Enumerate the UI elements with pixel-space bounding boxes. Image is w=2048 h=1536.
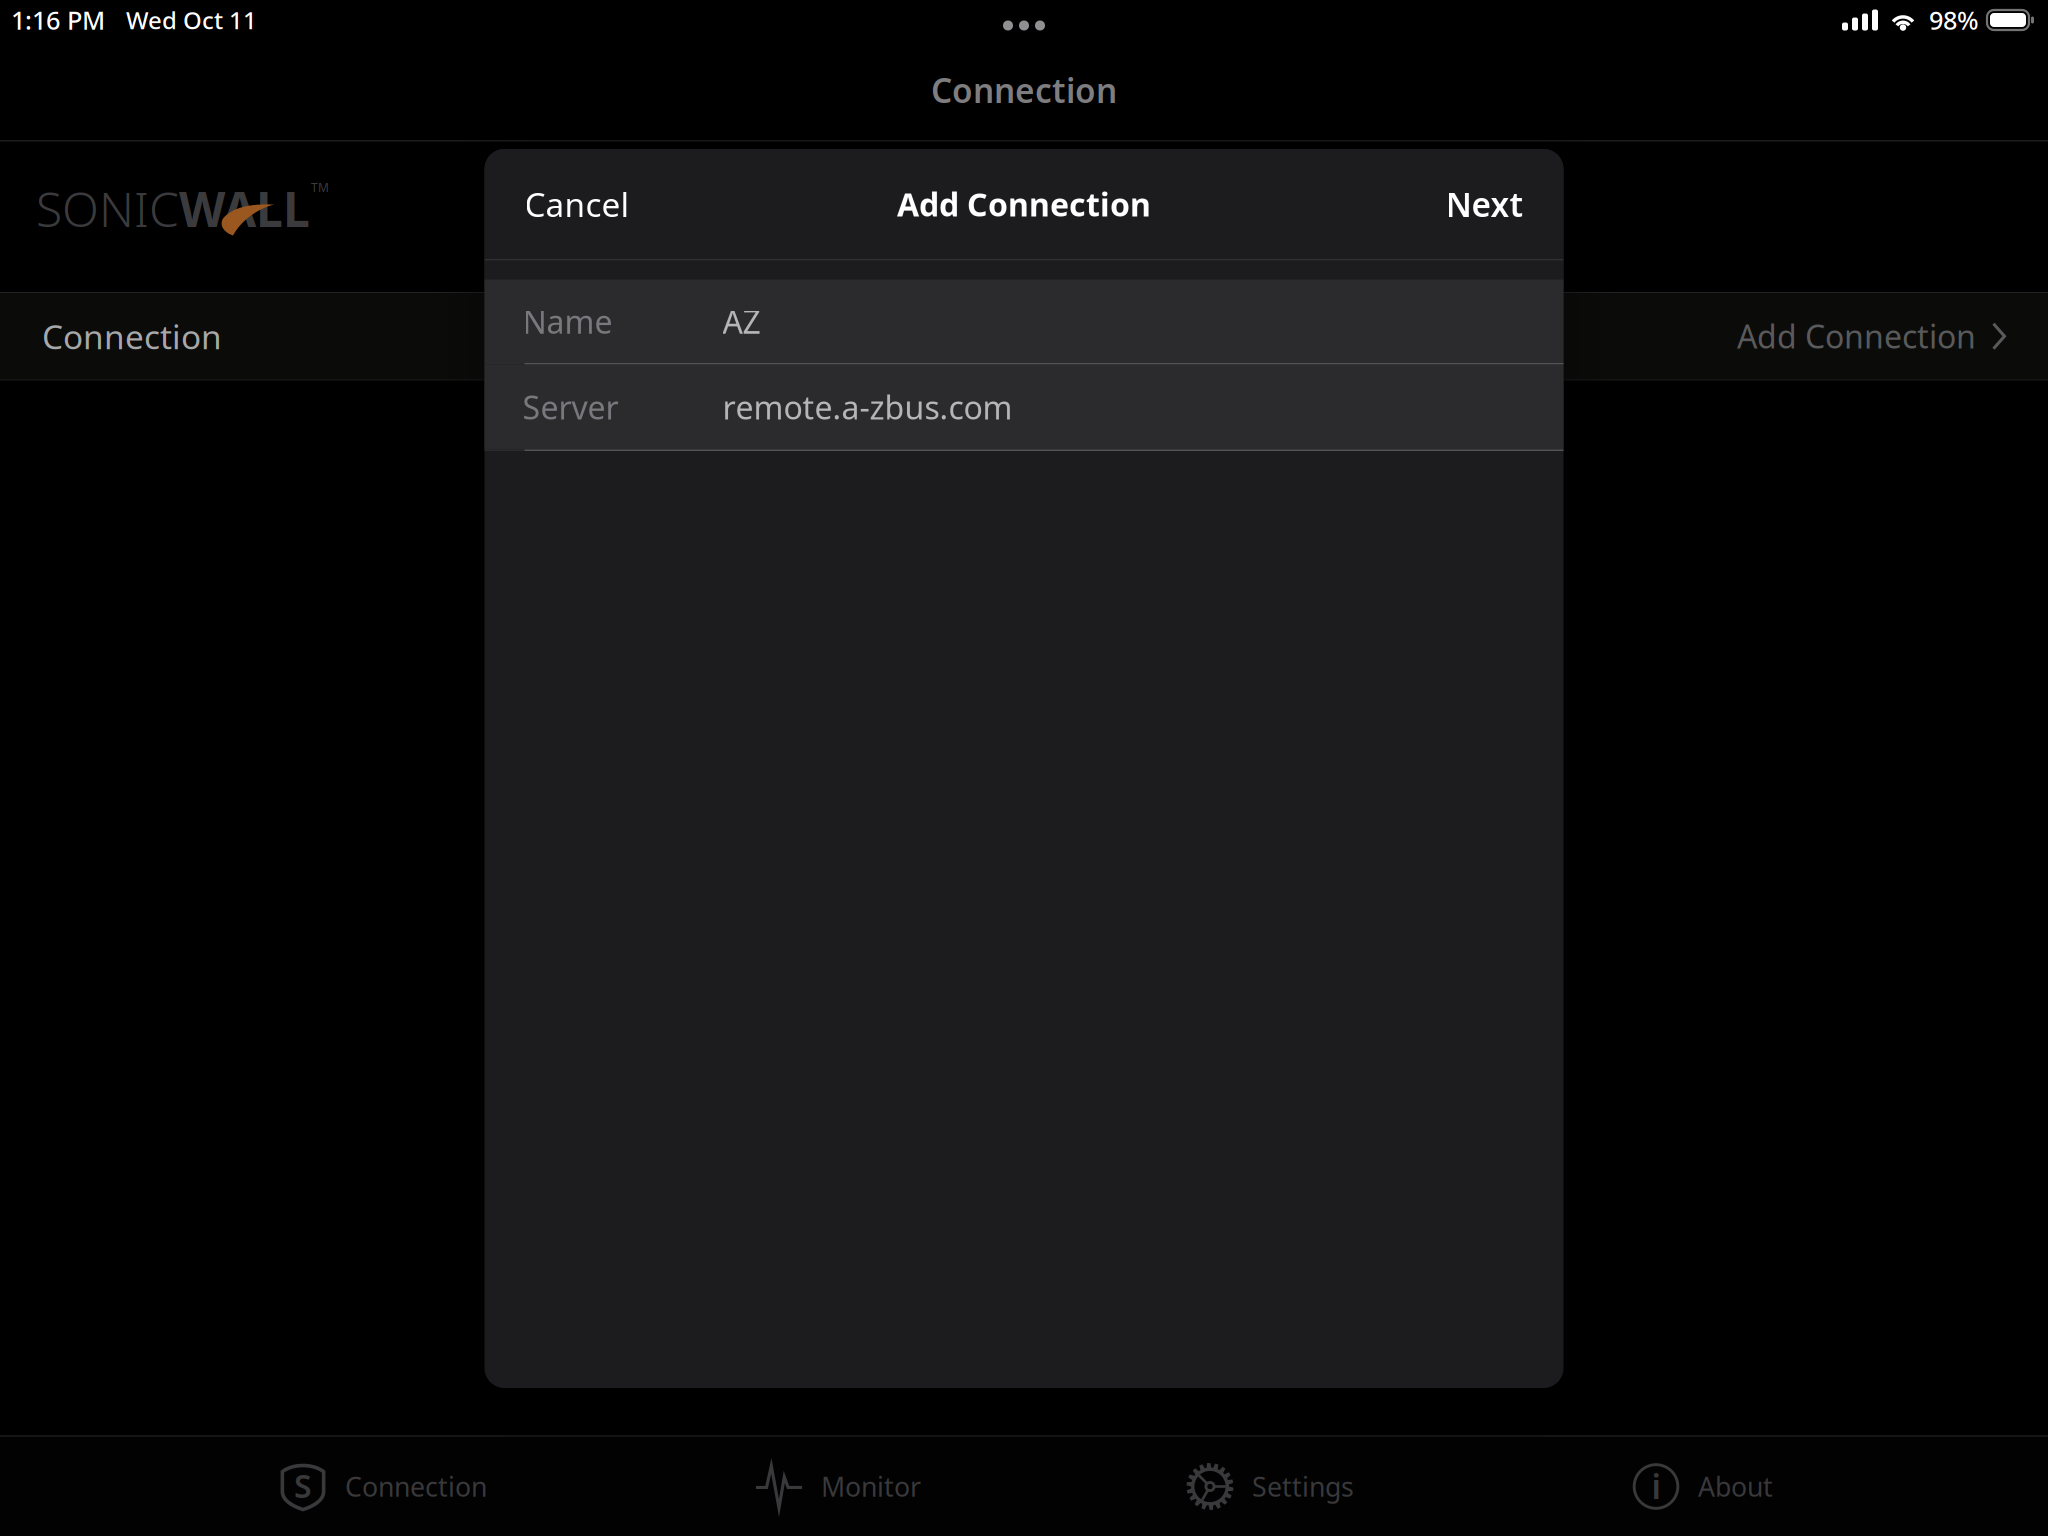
button[interactable]: S: [279, 1437, 755, 1536]
button[interactable]: Cancel: [514, 170, 639, 238]
button[interactable]: Name: [484, 279, 1563, 363]
staticText: TM: [311, 179, 329, 195]
staticText: SONIC: [36, 176, 179, 240]
staticText: Monitor: [821, 1469, 921, 1504]
button[interactable]: Settings: [1186, 1437, 1632, 1536]
staticText: Add Connection: [897, 183, 1151, 225]
staticText: AZ: [722, 300, 760, 342]
staticText: About: [1698, 1469, 1773, 1504]
button[interactable]: Add Connection: [484, 293, 2048, 379]
staticText: Next: [1445, 182, 1523, 226]
staticText: S: [294, 1464, 312, 1507]
staticText: WALL: [179, 176, 310, 240]
button[interactable]: Monitor: [755, 1437, 1186, 1536]
button[interactable]: Server: [484, 364, 1563, 449]
staticText: Settings: [1252, 1469, 1354, 1504]
staticText: Wed Oct 11: [126, 4, 257, 36]
staticText: i: [1651, 1464, 1660, 1508]
staticText: 1:16 PM: [11, 3, 105, 37]
staticText: remote.a-zbus.com: [722, 386, 1012, 428]
staticText: Cancel: [524, 182, 629, 226]
staticText: Add Connection: [1737, 315, 1976, 357]
button[interactable]: i: [1632, 1437, 1932, 1536]
button[interactable]: Next: [1435, 170, 1533, 238]
staticText: Connection: [931, 68, 1117, 112]
staticText: Connection: [42, 314, 222, 358]
staticText: Server: [522, 386, 618, 428]
button[interactable]: Connection: [0, 293, 484, 379]
staticText: 98%: [1929, 3, 1979, 37]
staticText: Connection: [345, 1469, 487, 1504]
staticText: Name: [522, 300, 612, 342]
